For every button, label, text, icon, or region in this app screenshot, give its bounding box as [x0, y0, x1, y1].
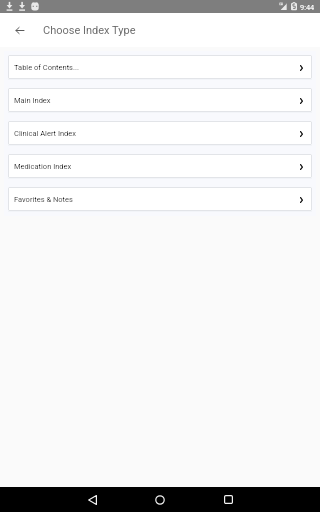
button[interactable]: Main Index: [8, 88, 312, 112]
staticText: 9:44: [300, 3, 315, 12]
button[interactable]: Favorites & Notes: [8, 187, 312, 211]
button[interactable]: Back: [7, 18, 31, 42]
staticText: Clinical Alert Index: [14, 129, 77, 138]
button[interactable]: Clinical Alert Index: [8, 121, 312, 145]
button[interactable]: Recent apps: [204, 487, 252, 512]
staticText: Favorites & Notes: [14, 195, 73, 204]
staticText: Medication Index: [14, 162, 72, 171]
staticText: Table of Contents...: [14, 63, 79, 72]
button[interactable]: Medication Index: [8, 154, 312, 178]
button[interactable]: Back: [68, 487, 116, 512]
staticText: Choose Index Type: [43, 24, 136, 37]
staticText: Main Index: [14, 96, 51, 105]
button[interactable]: Table of Contents...: [8, 55, 312, 79]
button[interactable]: Home: [136, 487, 184, 512]
